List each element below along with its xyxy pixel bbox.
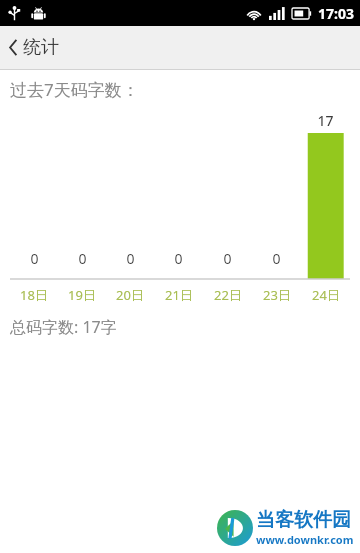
staticText: 0 bbox=[272, 249, 281, 268]
staticText: 0 bbox=[78, 249, 87, 268]
button[interactable]: 统计 bbox=[0, 26, 162, 69]
staticText: 22日 bbox=[214, 286, 242, 304]
staticText: 17 bbox=[317, 111, 334, 130]
staticText: 过去7天码字数： bbox=[10, 78, 139, 101]
staticText: 0 bbox=[30, 249, 39, 268]
staticText: 当客软件园 bbox=[256, 508, 351, 532]
staticText: 统计 bbox=[23, 36, 59, 59]
staticText: 0 bbox=[126, 249, 135, 268]
staticText: 18日 bbox=[20, 286, 48, 304]
staticText: 24日 bbox=[312, 286, 340, 304]
staticText: www.downkr.com bbox=[256, 532, 354, 547]
staticText: 总码字数: 17字 bbox=[10, 316, 117, 338]
staticText: 23日 bbox=[263, 286, 291, 304]
staticText: 17:03 bbox=[318, 4, 354, 23]
staticText: 20日 bbox=[116, 286, 144, 304]
staticText: 19日 bbox=[68, 286, 96, 304]
staticText: 0 bbox=[223, 249, 232, 268]
staticText: 0 bbox=[174, 249, 183, 268]
staticText: 21日 bbox=[165, 286, 193, 304]
